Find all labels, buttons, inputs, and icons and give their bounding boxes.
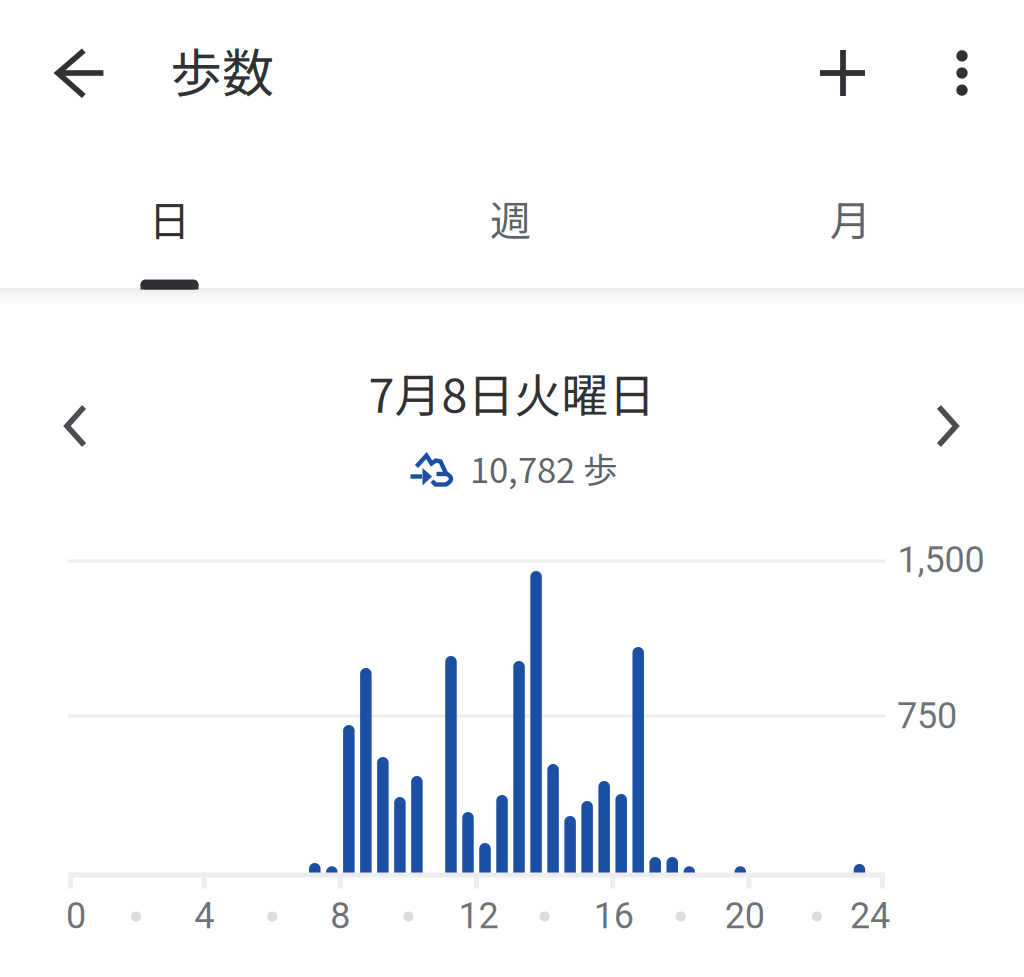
staticText: 8 xyxy=(330,895,350,937)
button[interactable]: 月 xyxy=(679,120,1020,295)
staticText: 月 xyxy=(829,188,870,248)
staticText: 日 xyxy=(149,188,190,248)
staticText: 1,500 xyxy=(897,539,984,581)
button[interactable]: Back xyxy=(38,31,122,115)
staticText: 20 xyxy=(725,895,765,937)
button[interactable]: Add data xyxy=(801,31,885,115)
staticText: 12 xyxy=(458,895,498,937)
button[interactable]: 日 xyxy=(0,120,340,295)
staticText: 16 xyxy=(594,895,634,937)
staticText: 週 xyxy=(490,188,531,248)
staticText: 0 xyxy=(66,895,86,937)
button[interactable]: Previous day xyxy=(32,381,122,471)
button[interactable]: 週 xyxy=(340,120,681,295)
staticText: 7月8日火曜日 xyxy=(368,359,655,426)
staticText: 24 xyxy=(850,895,890,937)
staticText: 750 xyxy=(897,695,957,737)
button[interactable]: More options xyxy=(920,31,1004,115)
staticText: 10,782 歩 xyxy=(470,443,618,493)
staticText: 歩数 xyxy=(170,32,274,107)
button[interactable]: Next day xyxy=(901,381,991,471)
staticText: 4 xyxy=(194,895,214,937)
